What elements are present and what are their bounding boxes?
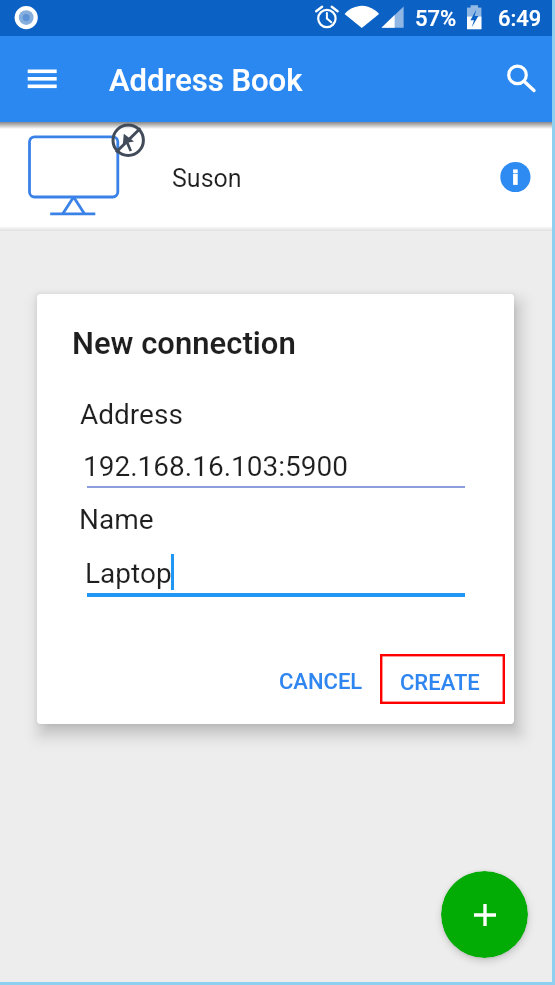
staticText: Suson: [172, 164, 242, 193]
button[interactable]: Add connection: [441, 871, 528, 958]
staticText: 192.168.16.103:5900: [83, 450, 348, 483]
button[interactable]: Search: [490, 45, 548, 103]
staticText: Laptop: [85, 557, 172, 590]
button[interactable]: CREATE: [380, 654, 505, 704]
staticText: CREATE: [400, 670, 480, 696]
button[interactable]: Open navigation drawer: [12, 43, 72, 103]
staticText: New connection: [72, 325, 296, 361]
staticText: Address: [80, 398, 183, 431]
staticText: CANCEL: [279, 669, 363, 695]
button[interactable]: Connection info: [493, 155, 538, 200]
button[interactable]: CANCEL: [260, 656, 382, 708]
staticText: 6:49: [498, 6, 542, 32]
button[interactable]: Suson: [0, 122, 555, 231]
staticText: Name: [79, 503, 154, 536]
staticText: 57%: [415, 6, 457, 32]
staticText: Address Book: [109, 62, 303, 98]
